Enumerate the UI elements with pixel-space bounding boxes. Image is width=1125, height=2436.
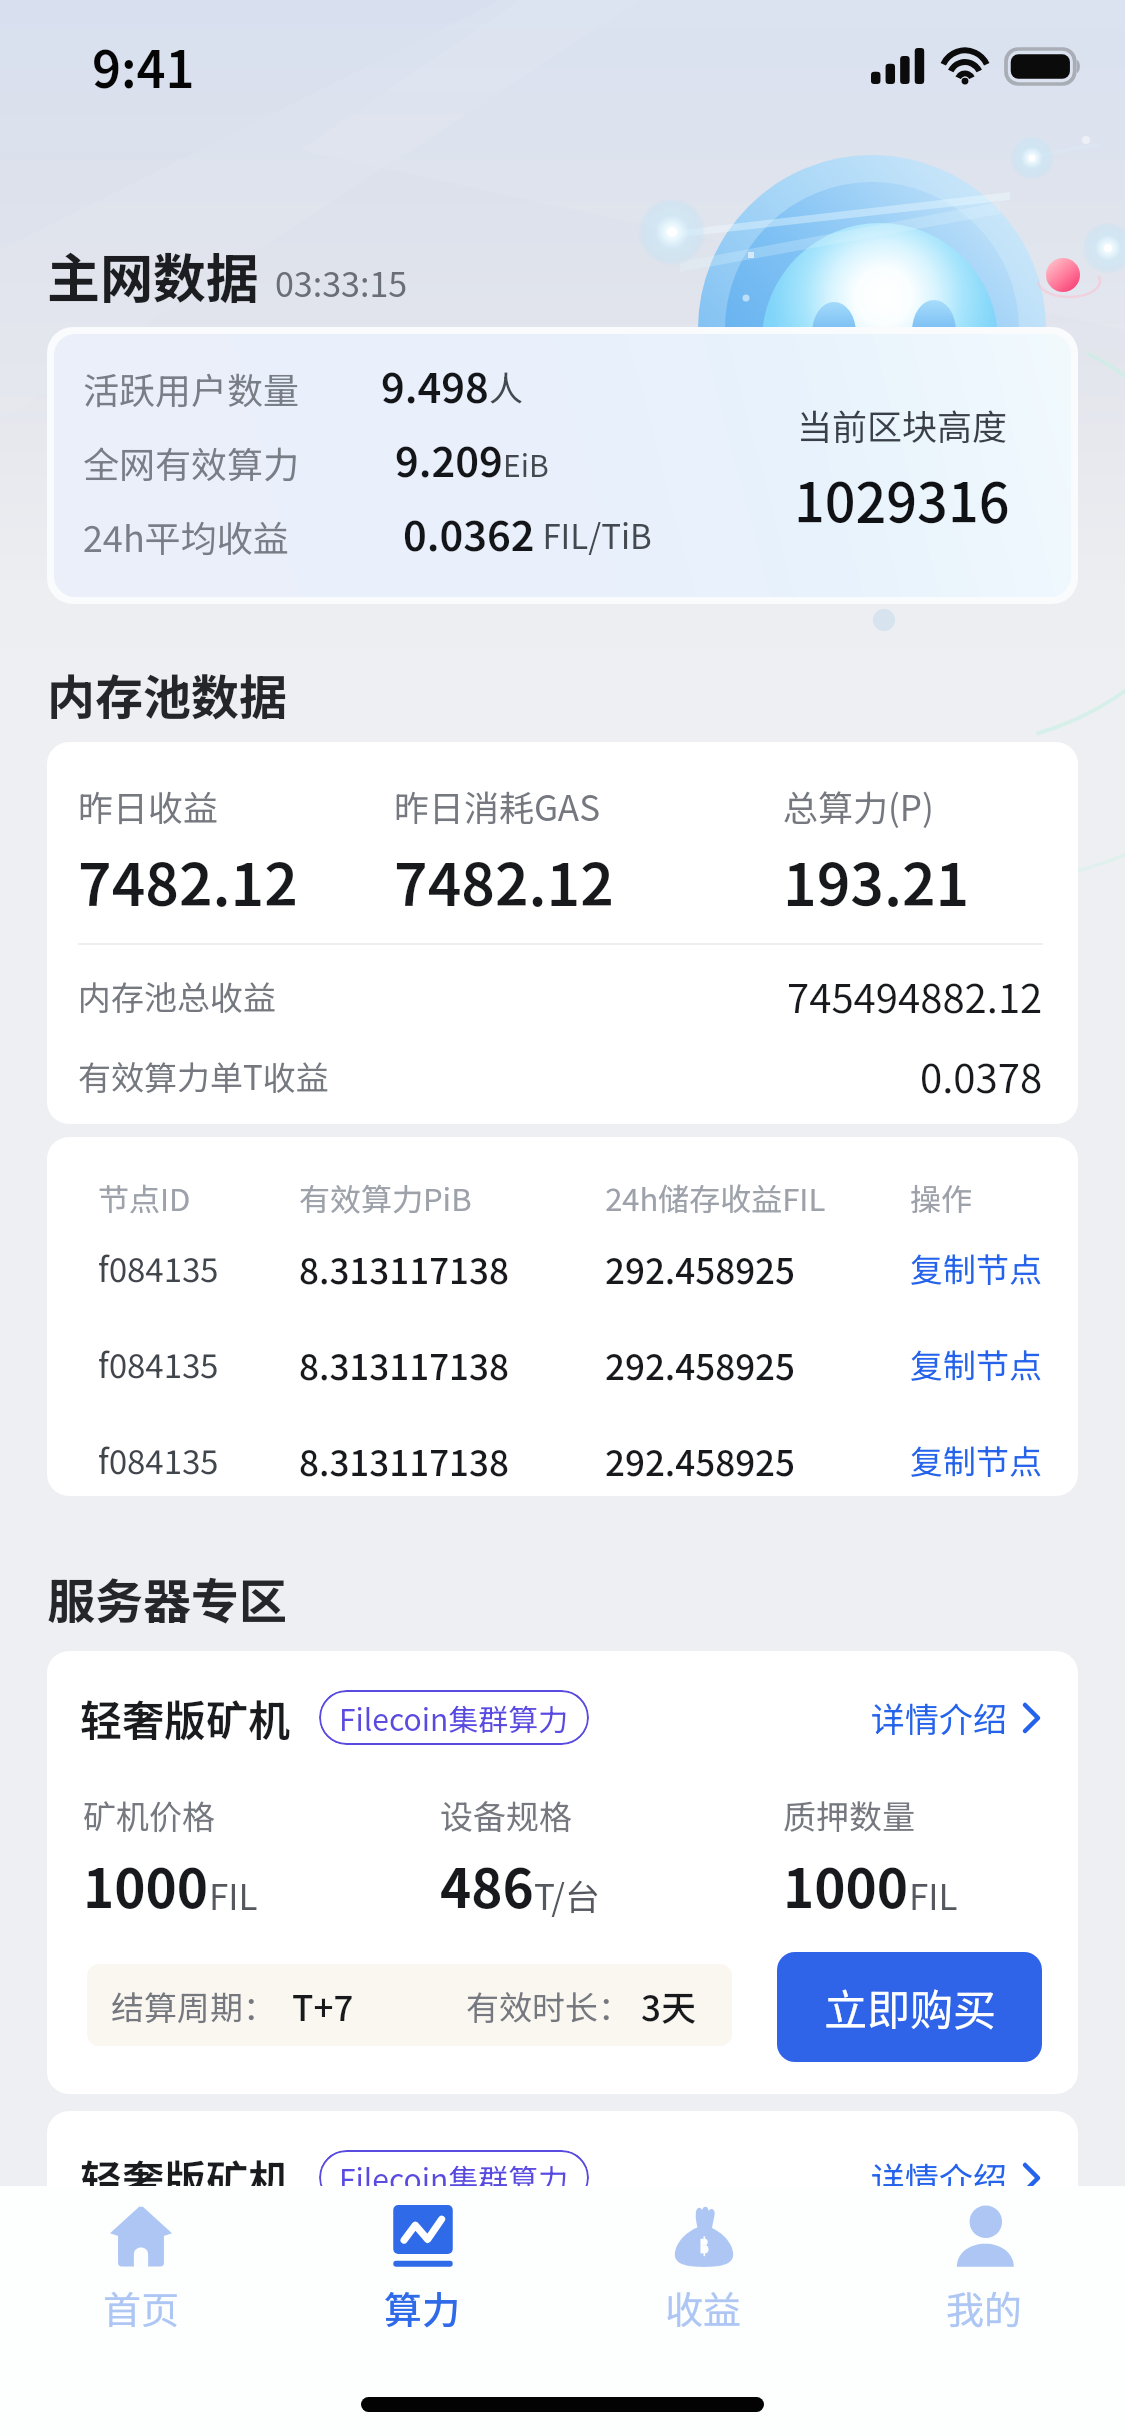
staticText: 有效算力PiB — [299, 1175, 605, 1220]
button[interactable]: Earnings — [563, 2205, 844, 2371]
staticText: 9:41 — [92, 30, 195, 102]
staticText: 1029316 — [794, 460, 1010, 538]
staticText: 292.458925 — [605, 1339, 910, 1390]
staticText: 8.313117138 — [299, 1435, 605, 1486]
staticText: f084135 — [98, 1340, 299, 1388]
staticText: FIL/TiB — [535, 511, 652, 559]
staticText: T+7 — [292, 1980, 354, 2031]
staticText: 矿机价格 — [83, 1791, 215, 1839]
staticText: 轻奢版矿机 — [80, 1687, 291, 1748]
staticText: 昨日消耗GAS — [394, 780, 601, 831]
staticText: 内存池总收益 — [78, 972, 276, 1020]
staticText: 292.458925 — [605, 1243, 910, 1294]
staticText: 486 — [440, 1847, 534, 1924]
staticText: 人 — [489, 362, 523, 411]
staticText: 服务器专区 — [47, 1563, 288, 1633]
staticText: 设备规格 — [440, 1791, 572, 1839]
staticText: 745494882.12 — [787, 967, 1043, 1025]
staticText: 9.498 — [381, 355, 489, 414]
button[interactable]: 立即购买 — [777, 1952, 1042, 2062]
staticText: 1000 — [83, 1847, 209, 1924]
staticText: 结算周期： — [111, 1982, 276, 2030]
staticText: 8.313117138 — [299, 1243, 605, 1294]
staticText: 复制节点 — [910, 1244, 1042, 1292]
staticText: 24h平均收益 — [83, 510, 289, 562]
staticText: 质押数量 — [783, 1791, 915, 1839]
staticText: 8.313117138 — [299, 1339, 605, 1390]
staticText: 当前区块高度 — [797, 399, 1008, 450]
staticText: 193.21 — [783, 839, 970, 923]
staticText: 复制节点 — [910, 1340, 1042, 1388]
button[interactable]: 复制节点 — [910, 1230, 1050, 1306]
staticText: 立即购买 — [824, 1976, 996, 2038]
staticText: 节点ID — [98, 1175, 299, 1220]
staticText: 7482.12 — [394, 839, 614, 923]
button[interactable]: 详情介绍 — [871, 2153, 1040, 2202]
staticText: 操作 — [910, 1175, 972, 1220]
staticText: FIL — [209, 1869, 258, 1920]
button[interactable]: 详情介绍 — [871, 1693, 1040, 1742]
button[interactable]: 复制节点 — [910, 1422, 1050, 1496]
button[interactable]: 复制节点 — [910, 1326, 1050, 1402]
staticText: 复制节点 — [910, 1436, 1042, 1484]
staticText: 昨日收益 — [78, 780, 219, 831]
staticText: 24h储存收益FIL — [605, 1175, 910, 1220]
staticText: 0.0362 — [403, 503, 535, 562]
staticText: Filecoin集群算力 — [339, 1696, 569, 1739]
staticText: 9.209 — [395, 429, 503, 488]
staticText: FIL — [909, 1869, 958, 1920]
button[interactable]: Home — [0, 2205, 282, 2371]
staticText: 有效算力单T收益 — [78, 1052, 329, 1100]
button[interactable]: Profile — [844, 2205, 1125, 2371]
staticText: Filecoin集群算力 — [339, 2156, 569, 2199]
staticText: 292.458925 — [605, 1435, 910, 1486]
staticText: 1000 — [783, 1847, 909, 1924]
staticText: 全网有效算力 — [83, 436, 300, 488]
staticText: 0.0378 — [920, 1047, 1043, 1105]
staticText: 算力 — [384, 2280, 461, 2335]
staticText: 03:33:15 — [275, 258, 408, 307]
staticText: 7482.12 — [78, 839, 298, 923]
staticText: EiB — [503, 442, 549, 485]
staticText: 活跃用户数量 — [83, 362, 300, 414]
staticText: 我的 — [946, 2280, 1023, 2335]
staticText: 有效时长： — [466, 1982, 631, 2030]
staticText: f084135 — [98, 1436, 299, 1484]
staticText: 内存池数据 — [47, 659, 288, 729]
button[interactable]: Hashrate — [282, 2205, 563, 2371]
staticText: 详情介绍 — [871, 2153, 1007, 2202]
staticText: 总算力(P) — [783, 780, 934, 831]
staticText: 3天 — [641, 1980, 696, 2031]
staticText: 收益 — [665, 2280, 742, 2335]
staticText: 主网数据 — [47, 237, 259, 314]
staticText: f084135 — [98, 1244, 299, 1292]
staticText: T/台 — [534, 1869, 601, 1920]
staticText: 详情介绍 — [871, 1693, 1007, 1742]
staticText: 轻奢版矿机 — [80, 2147, 291, 2208]
staticText: 首页 — [103, 2280, 180, 2335]
